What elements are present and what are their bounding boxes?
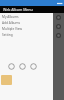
button[interactable]: Icon [19,63,26,70]
staticText: Add Albums [2,21,21,25]
button[interactable]: Add Albums [0,20,64,26]
button[interactable]: Multiple View [0,26,64,32]
staticText: Multiple View [2,27,23,31]
staticText: My Albums [2,15,19,19]
button[interactable]: Setting [0,32,64,38]
button[interactable]: Icon [8,63,15,70]
staticText: Setting [2,33,13,37]
button[interactable]: My Albums [0,14,64,20]
staticText: Web Album Menu [3,7,33,12]
button[interactable]: Icon [30,63,37,70]
